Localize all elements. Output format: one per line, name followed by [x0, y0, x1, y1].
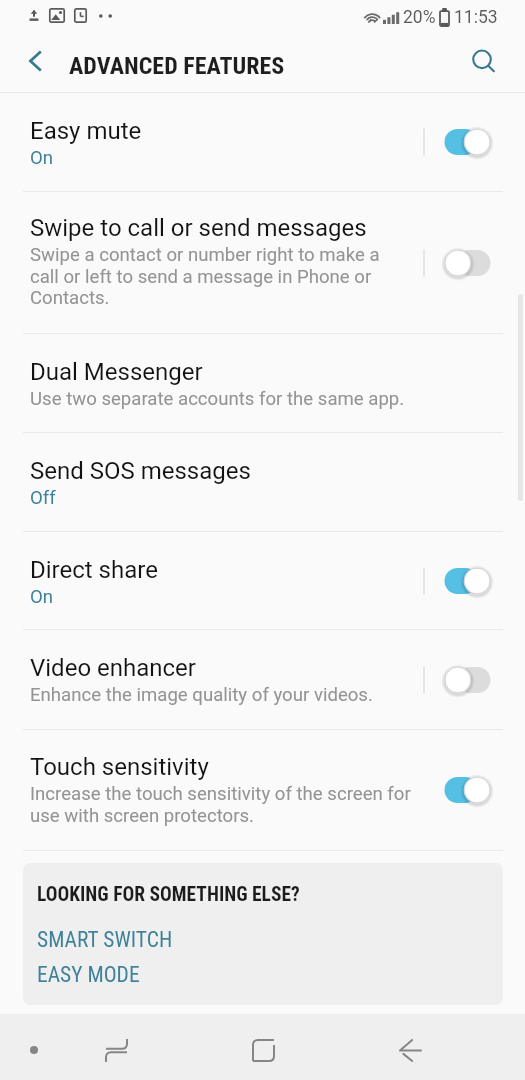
staticText: Dual Messenger — [30, 358, 203, 386]
staticText: LOOKING FOR SOMETHING ELSE? — [37, 883, 300, 906]
button[interactable]: Search — [464, 42, 506, 84]
button[interactable]: Send SOS messages — [0, 433, 525, 531]
button[interactable]: Easy mute — [0, 93, 525, 191]
staticText: 11:53 — [454, 7, 498, 28]
staticText: Video enhancer — [30, 654, 196, 682]
button[interactable]: Recent apps — [95, 1029, 137, 1071]
staticText: Enhance the image quality of your videos… — [30, 684, 373, 706]
staticText: Direct share — [30, 556, 158, 584]
button[interactable]: SMART SWITCH — [37, 927, 173, 952]
staticText: Swipe a contact or number right to make … — [30, 244, 411, 308]
button[interactable]: Toggle on — [400, 761, 500, 819]
button[interactable]: Show menu — [13, 1029, 55, 1071]
button[interactable]: Video enhancer — [0, 630, 525, 729]
button[interactable]: Touch sensitivity — [0, 730, 525, 850]
button[interactable]: Back — [389, 1029, 431, 1071]
staticText: On — [30, 586, 54, 608]
button[interactable]: Direct share — [0, 532, 525, 629]
button[interactable]: Navigate up — [12, 38, 58, 84]
button[interactable]: Toggle off — [400, 234, 500, 292]
button[interactable]: Dual Messenger — [0, 334, 525, 432]
staticText: Off — [30, 487, 56, 509]
button[interactable]: Toggle on — [400, 552, 500, 610]
staticText: 20% — [403, 7, 436, 28]
staticText: Use two separate accounts for the same a… — [30, 388, 405, 410]
button[interactable]: Toggle off — [400, 651, 500, 709]
staticText: Increase the touch sensitivity of the sc… — [30, 783, 411, 826]
button[interactable]: Home — [242, 1029, 284, 1071]
button[interactable]: Toggle on — [400, 113, 500, 171]
button[interactable]: Swipe to call or send messages — [0, 192, 525, 333]
button[interactable]: EASY MODE — [37, 962, 140, 987]
staticText: ADVANCED FEATURES — [69, 52, 285, 80]
staticText: Easy mute — [30, 117, 142, 145]
staticText: Swipe to call or send messages — [30, 214, 367, 242]
staticText: Send SOS messages — [30, 457, 251, 485]
staticText: On — [30, 147, 54, 169]
staticText: Touch sensitivity — [30, 753, 209, 781]
